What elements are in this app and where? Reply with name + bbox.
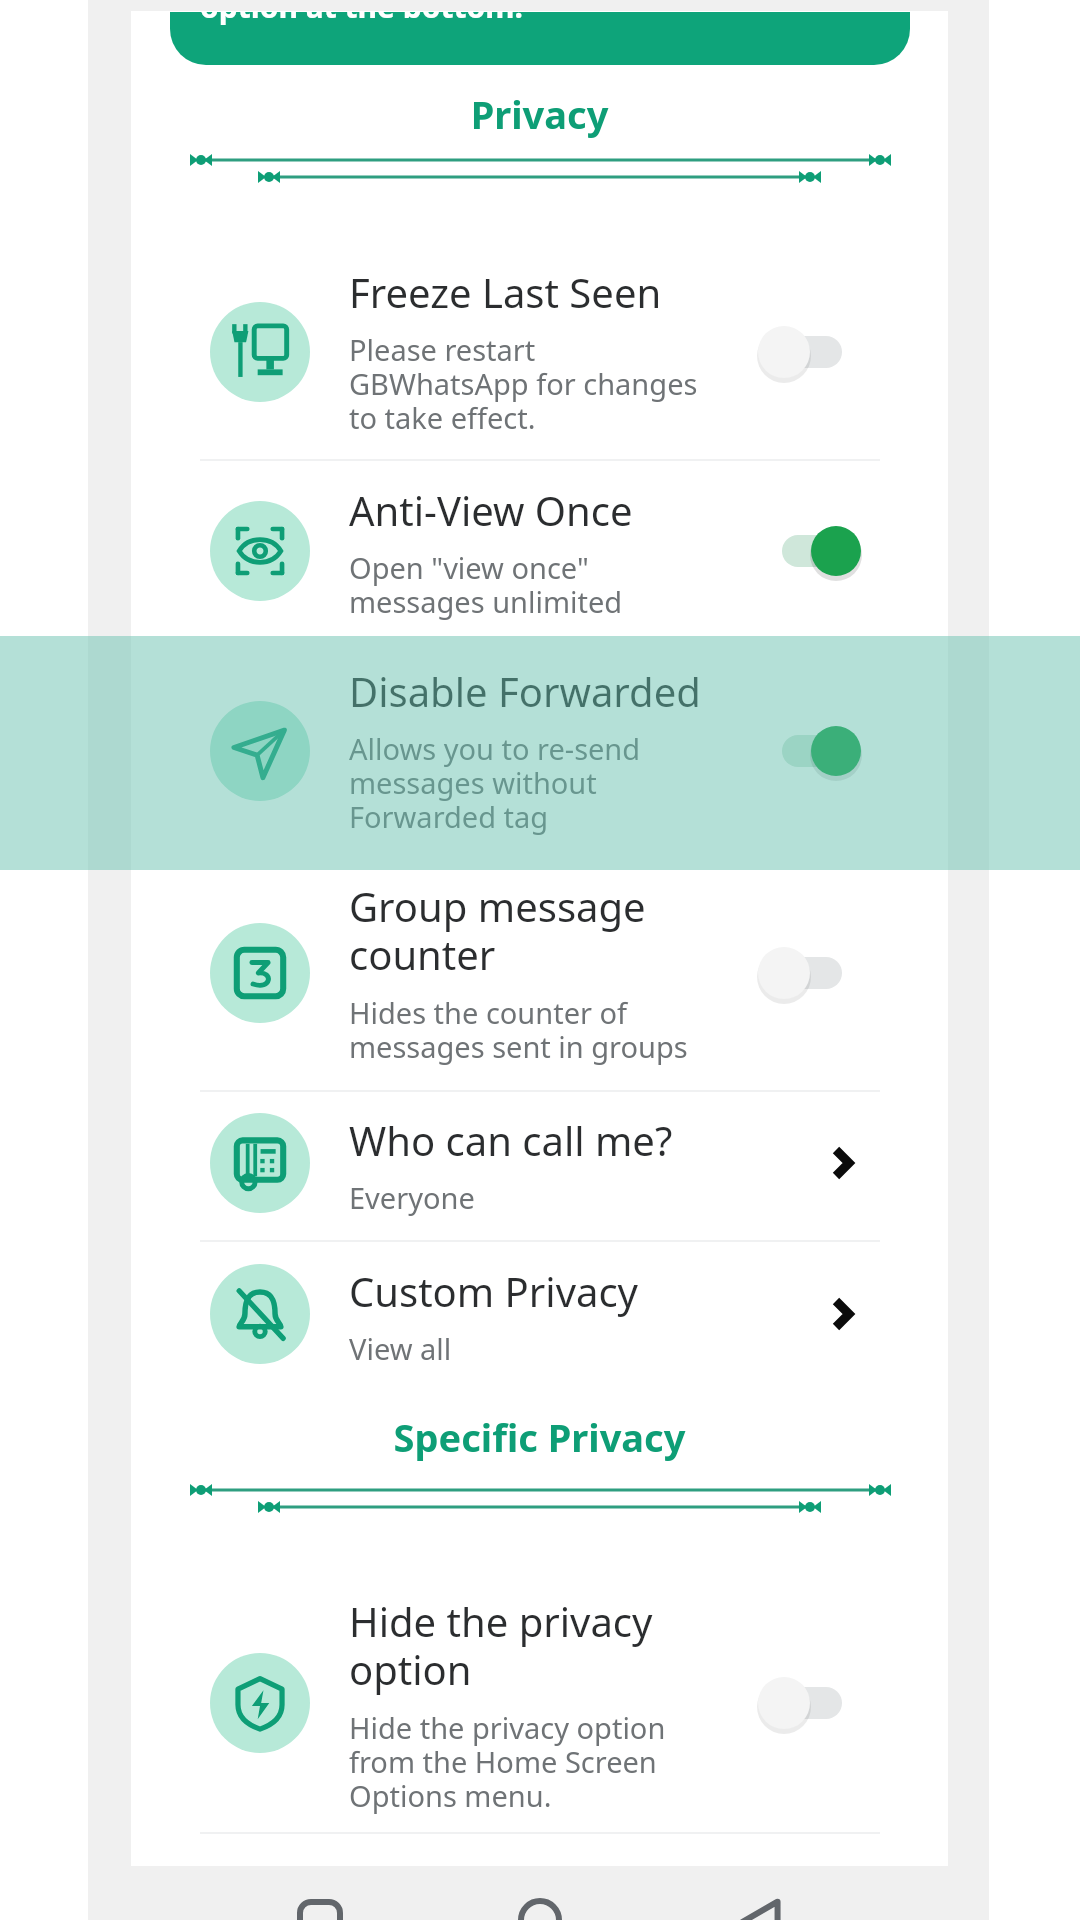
staticText: Hides the counter of messages sent in gr… (349, 993, 688, 1067)
staticText: Group message counter (349, 879, 646, 982)
staticText: Allows you to re-send messages without F… (349, 729, 641, 837)
staticText: Hide the privacy option (349, 1594, 653, 1697)
button[interactable]: Freeze Last Seen (131, 240, 948, 461)
button[interactable]: Disable Forwarded (131, 636, 948, 870)
button[interactable]: Who can call me? (131, 1090, 948, 1242)
staticText: View all (349, 1329, 452, 1368)
staticText: Anti-View Once (349, 483, 633, 537)
button[interactable]: Back (738, 1898, 784, 1920)
staticText: Everyone (349, 1178, 475, 1217)
staticText: Who can call me? (349, 1113, 673, 1167)
button[interactable]: Anti-View Once (131, 459, 948, 636)
button[interactable]: Custom Privacy (131, 1240, 948, 1390)
staticText: Privacy (131, 88, 948, 140)
staticText: Hide the privacy option from the Home Sc… (349, 1708, 666, 1816)
staticText: Disable Forwarded (349, 664, 701, 718)
button[interactable]: Recent apps (298, 1900, 342, 1920)
staticText: Specific Privacy (131, 1411, 948, 1463)
button[interactable]: Hide the privacy option (131, 1570, 948, 1834)
staticText: Open "view once" messages unlimited (349, 548, 623, 622)
button[interactable]: Home (518, 1898, 562, 1920)
staticText: Please restart GBWhatsApp for changes to… (349, 330, 698, 438)
staticText: Custom Privacy (349, 1264, 638, 1318)
staticText: Freeze Last Seen (349, 265, 662, 319)
button[interactable]: Group message counter (131, 870, 948, 1092)
staticText: option at the bottom. (200, 12, 523, 27)
